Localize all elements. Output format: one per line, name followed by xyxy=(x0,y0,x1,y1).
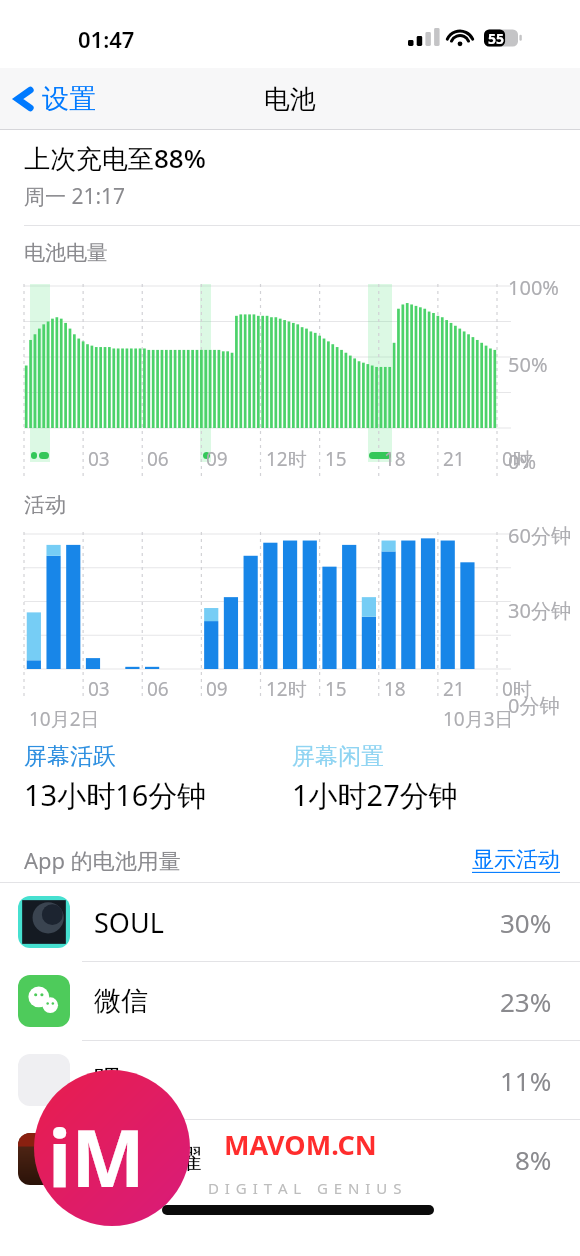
staticText: 12时 xyxy=(266,446,307,472)
staticText: 01:47 xyxy=(78,24,135,54)
staticText: 上次充电至88% xyxy=(24,140,206,176)
staticText: 吧 xyxy=(94,1063,121,1097)
staticText: 微信 xyxy=(94,984,148,1018)
staticText: 电池 xyxy=(264,83,316,116)
staticText: 0分钟 xyxy=(508,692,560,719)
button[interactable]: 返回 xyxy=(0,76,110,122)
staticText: 18 xyxy=(384,676,406,702)
staticText: 电池电量 xyxy=(24,240,108,266)
staticText: 0时 xyxy=(502,676,532,702)
staticText: 1小时27分钟 xyxy=(292,775,458,815)
staticText: 8% xyxy=(515,1142,552,1177)
staticText: 23% xyxy=(500,984,552,1019)
staticText: 55 xyxy=(488,29,505,48)
staticText: 03 xyxy=(88,676,110,702)
button[interactable]: 显示活动 xyxy=(452,840,580,880)
staticText: 活动 xyxy=(24,492,66,518)
staticText: MAVOM.CN xyxy=(224,1126,377,1163)
button[interactable]: SOUL xyxy=(0,883,580,961)
staticText: 30分钟 xyxy=(508,597,571,624)
staticText: 21 xyxy=(443,676,465,702)
staticText: 21 xyxy=(443,446,465,472)
staticText: 13小时16分钟 xyxy=(24,775,207,815)
staticText: 18 xyxy=(384,446,406,472)
staticText: 0% xyxy=(508,448,537,475)
staticText: D I G I T A L G E N I U S xyxy=(208,1178,403,1198)
staticText: 03 xyxy=(88,446,110,472)
staticText: 12时 xyxy=(266,676,307,702)
staticText: 显示活动 xyxy=(472,846,560,874)
other: 返回 xyxy=(14,84,34,114)
staticText: 设置 xyxy=(42,82,96,116)
staticText: 06 xyxy=(147,446,169,472)
staticText: 60分钟 xyxy=(508,522,571,549)
staticText: 50% xyxy=(508,351,548,378)
staticText: 11% xyxy=(500,1063,552,1098)
staticText: SOUL xyxy=(94,904,164,941)
staticText: 10月3日 xyxy=(443,706,514,732)
staticText: iM xyxy=(48,1104,145,1210)
staticText: 15 xyxy=(325,446,347,472)
staticText: 0时 xyxy=(502,446,532,472)
staticText: 09 xyxy=(206,446,228,472)
staticText: 09 xyxy=(206,676,228,702)
staticText: 15 xyxy=(325,676,347,702)
staticText: 100% xyxy=(508,274,559,301)
staticText: 周一 21:17 xyxy=(24,182,126,211)
staticText: 屏幕活跃 xyxy=(24,742,116,771)
staticText: 30% xyxy=(500,905,552,940)
staticText: 06 xyxy=(147,676,169,702)
staticText: 王者荣耀 xyxy=(94,1142,202,1176)
staticText: 屏幕闲置 xyxy=(292,742,384,771)
staticText: App 的电池用量 xyxy=(24,845,181,875)
button[interactable]: 王者荣耀 xyxy=(0,1120,580,1198)
button[interactable]: 吧 xyxy=(0,1041,580,1119)
staticText: 10月2日 xyxy=(29,706,100,732)
button[interactable]: 微信 xyxy=(0,962,580,1040)
